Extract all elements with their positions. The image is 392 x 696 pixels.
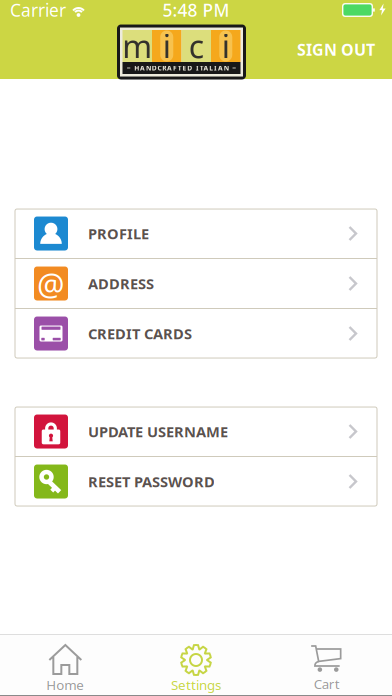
staticText: Cart bbox=[314, 675, 340, 693]
button[interactable]: @ bbox=[15, 259, 377, 308]
staticText: RESET PASSWORD bbox=[88, 472, 215, 491]
staticText: CREDIT CARDS bbox=[88, 324, 192, 343]
button[interactable]: Home bbox=[0, 635, 131, 695]
staticText: SIGN OUT bbox=[297, 39, 375, 60]
staticText: c bbox=[189, 25, 204, 67]
button[interactable]: PROFILE bbox=[15, 209, 377, 258]
staticText: UPDATE USERNAME bbox=[88, 422, 228, 441]
button[interactable]: UPDATE USERNAME bbox=[15, 407, 377, 456]
staticText: Home bbox=[46, 676, 84, 694]
button[interactable]: CREDIT CARDS bbox=[15, 309, 377, 358]
staticText: ~ HANDCRAFTED ITALIAN ~ bbox=[127, 64, 236, 72]
staticText: i bbox=[163, 25, 171, 67]
staticText: 5:48 PM bbox=[162, 0, 229, 21]
button[interactable]: Cart bbox=[261, 635, 392, 695]
button[interactable]: SIGN OUT bbox=[288, 30, 384, 69]
staticText: ADDRESS bbox=[88, 274, 154, 293]
staticText: m bbox=[122, 25, 152, 67]
staticText: i bbox=[222, 25, 230, 67]
button[interactable]: Settings bbox=[131, 635, 261, 695]
staticText: Carrier bbox=[10, 0, 66, 21]
staticText: PROFILE bbox=[88, 224, 149, 243]
staticText: Settings bbox=[171, 676, 221, 694]
staticText: @ bbox=[37, 263, 65, 304]
button[interactable]: RESET PASSWORD bbox=[15, 457, 377, 506]
